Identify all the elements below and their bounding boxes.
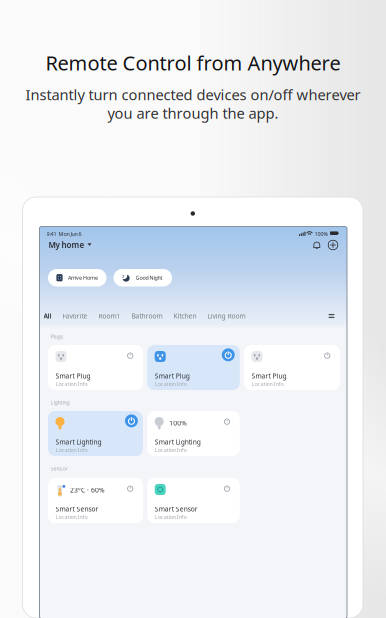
staticText: you are through the app. xyxy=(107,103,278,123)
button[interactable]: z xyxy=(113,269,172,286)
button[interactable]: Notifications xyxy=(312,240,322,250)
button[interactable]: Favorite xyxy=(62,311,87,320)
button[interactable]: Smart Plug xyxy=(244,345,340,390)
staticText: Smart Lighting xyxy=(155,437,201,446)
staticText: Sensor xyxy=(50,465,67,472)
staticText: Arrive Home xyxy=(68,274,98,281)
staticText: Location Info xyxy=(155,513,187,521)
button[interactable]: 100% xyxy=(147,411,240,456)
button[interactable]: Living Room xyxy=(207,311,245,320)
button[interactable]: Smart Sensor xyxy=(147,478,240,523)
staticText: Room1 xyxy=(98,311,120,320)
button[interactable]: All xyxy=(43,311,51,320)
button[interactable]: 23ºC · 60% xyxy=(48,478,143,523)
staticText: Smart Plug xyxy=(251,371,286,380)
staticText: Remote Control from Anywhere xyxy=(45,49,340,76)
staticText: 100% xyxy=(169,418,187,427)
button[interactable]: Kitchen xyxy=(173,311,196,320)
staticText: Location Info xyxy=(251,380,283,388)
button[interactable]: Bathroom xyxy=(131,311,162,320)
staticText: Location Info xyxy=(55,446,87,454)
staticText: Plugs xyxy=(50,333,63,340)
button[interactable]: Smart Plug xyxy=(48,345,143,390)
button[interactable]: Smart Lighting xyxy=(48,411,143,456)
staticText: My home xyxy=(48,239,84,250)
staticText: All xyxy=(43,311,51,320)
staticText: Bathroom xyxy=(131,311,162,320)
staticText: Location Info xyxy=(155,446,187,454)
staticText: Kitchen xyxy=(173,311,196,320)
staticText: Favorite xyxy=(62,311,87,320)
staticText: Good Night xyxy=(135,274,162,281)
button[interactable]: Arrive Home xyxy=(48,269,106,286)
staticText: Living Room xyxy=(207,311,245,320)
staticText: Smart Plug xyxy=(55,371,90,380)
button[interactable]: Room1 xyxy=(98,311,120,320)
staticText: Instantly turn connected devices on/off … xyxy=(25,85,360,104)
staticText: Smart Sensor xyxy=(155,504,198,513)
button[interactable]: Add device xyxy=(328,240,338,250)
staticText: Smart Plug xyxy=(155,371,190,380)
button[interactable]: Sort xyxy=(327,311,336,320)
staticText: Location Info xyxy=(55,380,87,388)
button[interactable]: My home xyxy=(48,239,91,250)
staticText: Lighting xyxy=(50,399,69,406)
staticText: Smart Sensor xyxy=(55,504,98,513)
staticText: Location Info xyxy=(155,380,187,388)
staticText: z xyxy=(122,273,125,280)
staticText: 23ºC · 60% xyxy=(70,485,105,494)
staticText: 100% xyxy=(314,230,327,238)
staticText: Smart Lighting xyxy=(55,437,101,446)
staticText: Location Info xyxy=(55,513,87,521)
staticText: 9:41 Mon Jun 6 xyxy=(46,230,81,238)
button[interactable]: Smart Plug xyxy=(147,345,240,390)
